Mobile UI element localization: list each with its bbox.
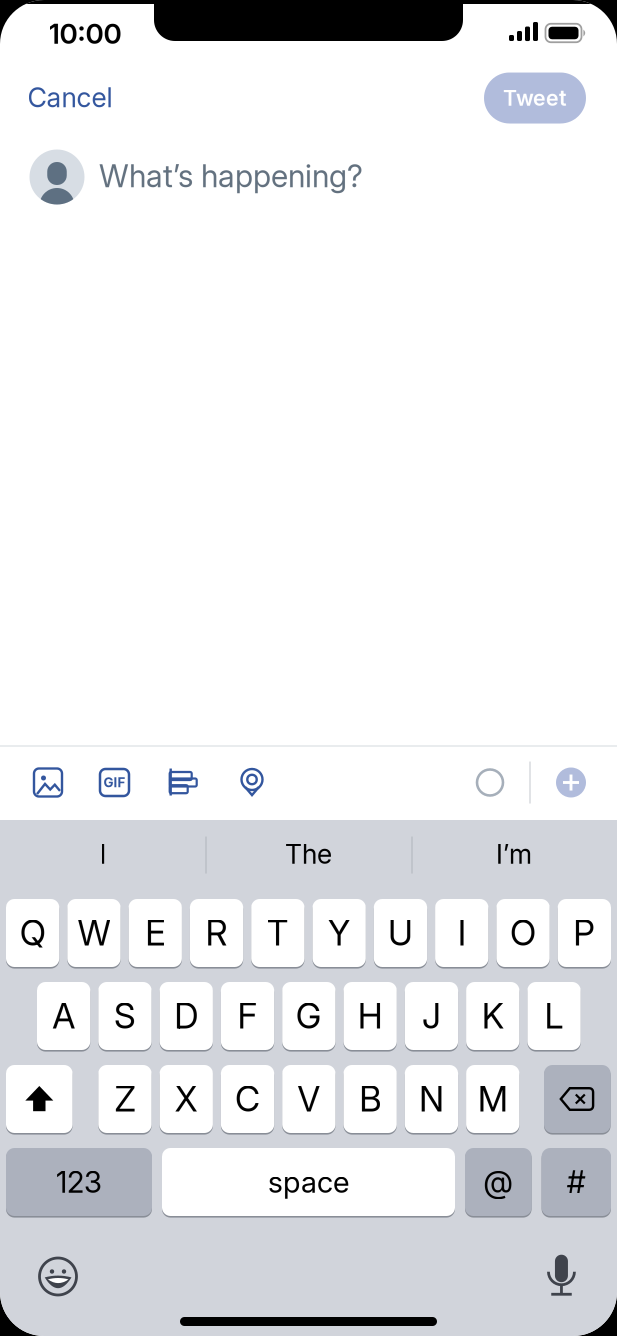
staticText: A bbox=[52, 996, 75, 1036]
staticText: U bbox=[388, 913, 413, 953]
staticText: J bbox=[422, 996, 441, 1036]
button[interactable]: I’m bbox=[416, 823, 612, 885]
staticText: C bbox=[235, 1079, 260, 1119]
staticText: O bbox=[510, 913, 536, 953]
button[interactable]: Emoji bbox=[38, 1257, 77, 1296]
button[interactable]: W bbox=[67, 898, 121, 968]
staticText: 123 bbox=[56, 1165, 102, 1199]
button[interactable]: Tweet bbox=[484, 72, 586, 123]
button[interactable]: O bbox=[496, 898, 550, 968]
button[interactable]: # bbox=[542, 1147, 611, 1217]
staticText: N bbox=[419, 1079, 444, 1119]
staticText: X bbox=[175, 1079, 198, 1119]
staticText: G bbox=[296, 996, 322, 1036]
button[interactable]: K bbox=[466, 981, 519, 1051]
button[interactable]: Shift bbox=[6, 1064, 73, 1134]
button[interactable]: B bbox=[343, 1064, 397, 1134]
button[interactable]: S bbox=[98, 981, 152, 1051]
staticText: W bbox=[77, 913, 110, 953]
staticText: K bbox=[482, 996, 504, 1036]
button[interactable]: J bbox=[405, 981, 458, 1051]
staticText: # bbox=[567, 1164, 586, 1200]
staticText: R bbox=[205, 913, 227, 953]
button[interactable]: C bbox=[221, 1064, 274, 1134]
button[interactable]: M bbox=[466, 1064, 519, 1134]
staticText: Q bbox=[20, 913, 46, 953]
staticText: H bbox=[358, 996, 383, 1036]
button[interactable]: I bbox=[435, 898, 488, 968]
button[interactable]: space bbox=[162, 1147, 455, 1217]
staticText: @ bbox=[483, 1164, 513, 1200]
button[interactable]: D bbox=[160, 981, 213, 1051]
button[interactable]: P bbox=[558, 898, 611, 968]
staticText: S bbox=[114, 996, 136, 1036]
staticText: Y bbox=[328, 913, 351, 953]
staticText: GIF bbox=[103, 775, 125, 790]
button[interactable]: R bbox=[190, 898, 243, 968]
button[interactable]: I bbox=[5, 823, 201, 885]
button[interactable]: Q bbox=[6, 898, 59, 968]
staticText: I bbox=[99, 838, 106, 870]
staticText: T bbox=[267, 913, 289, 953]
button[interactable]: E bbox=[129, 898, 182, 968]
staticText: B bbox=[359, 1079, 381, 1119]
button[interactable]: Add GIF bbox=[100, 769, 129, 796]
staticText: L bbox=[544, 996, 563, 1036]
button[interactable]: G bbox=[282, 981, 335, 1051]
button[interactable]: F bbox=[221, 981, 274, 1051]
staticText: Cancel bbox=[27, 82, 112, 113]
staticText: Tweet bbox=[503, 85, 567, 111]
button[interactable]: Add photo bbox=[34, 768, 62, 796]
button[interactable]: Add poll bbox=[169, 768, 197, 796]
button[interactable]: T bbox=[251, 898, 304, 968]
button[interactable]: @ bbox=[465, 1147, 532, 1217]
staticText: The bbox=[285, 838, 332, 870]
staticText: Z bbox=[114, 1079, 135, 1119]
button[interactable]: Add tweet bbox=[556, 767, 586, 797]
staticText: I’m bbox=[496, 838, 532, 870]
button[interactable]: Add location bbox=[238, 768, 266, 796]
staticText: F bbox=[237, 996, 257, 1036]
button[interactable]: 123 bbox=[6, 1147, 152, 1217]
button[interactable]: A bbox=[37, 981, 90, 1051]
staticText: D bbox=[174, 996, 198, 1036]
button[interactable]: Delete bbox=[544, 1064, 611, 1134]
staticText: E bbox=[145, 913, 165, 953]
button[interactable]: Dictate bbox=[546, 1254, 577, 1296]
button[interactable]: H bbox=[343, 981, 397, 1051]
button[interactable]: V bbox=[282, 1064, 335, 1134]
button[interactable]: U bbox=[374, 898, 427, 968]
button[interactable]: Cancel bbox=[27, 82, 112, 113]
staticText: P bbox=[573, 913, 595, 953]
button[interactable]: X bbox=[160, 1064, 213, 1134]
staticText: space bbox=[268, 1165, 349, 1199]
staticText: I bbox=[458, 913, 466, 953]
button[interactable]: The bbox=[210, 823, 406, 885]
staticText: 10:00 bbox=[48, 17, 121, 50]
button[interactable]: L bbox=[527, 981, 581, 1051]
staticText: V bbox=[297, 1079, 320, 1119]
button[interactable]: N bbox=[405, 1064, 458, 1134]
button[interactable]: Y bbox=[312, 898, 366, 968]
staticText: What’s happening? bbox=[99, 158, 363, 194]
button[interactable]: Z bbox=[98, 1064, 152, 1134]
staticText: M bbox=[478, 1079, 508, 1119]
